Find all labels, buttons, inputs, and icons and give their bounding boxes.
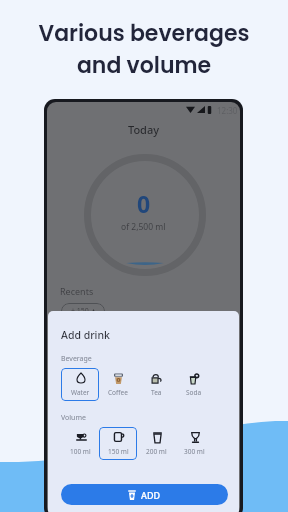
staticText: 0 [137,188,151,219]
staticText: ADD [141,489,161,501]
staticText: Add drink [61,328,110,342]
staticText: Various beverages and volume [0,18,288,81]
staticText: Beverage [61,354,92,364]
button[interactable]: 200 ml [137,427,175,460]
staticText: of 2,500 ml [121,221,166,233]
staticText: 300 ml [184,447,205,456]
button[interactable]: Water [61,368,99,401]
button[interactable]: + 150 [61,303,105,319]
button[interactable]: Soda [175,368,213,401]
staticText: Water [71,388,90,397]
staticText: Soda [186,388,202,397]
staticText: 100 ml [70,447,91,456]
staticText: Tea [151,388,162,397]
staticText: Recents [60,285,94,297]
staticText: Coffee [108,388,128,397]
button[interactable]: 150 ml [99,427,137,460]
staticText: 12:30 [217,105,238,114]
button[interactable]: ADD [61,484,228,505]
staticText: 150 ml [108,447,129,456]
button[interactable]: 100 ml [61,427,99,460]
button[interactable]: 300 ml [175,427,213,460]
button[interactable]: Tea [137,368,175,401]
staticText: Volume [61,413,86,423]
staticText: 200 ml [146,447,167,456]
button[interactable]: Coffee [99,368,137,401]
staticText: Today [47,122,240,137]
staticText: + 150 [71,306,91,316]
